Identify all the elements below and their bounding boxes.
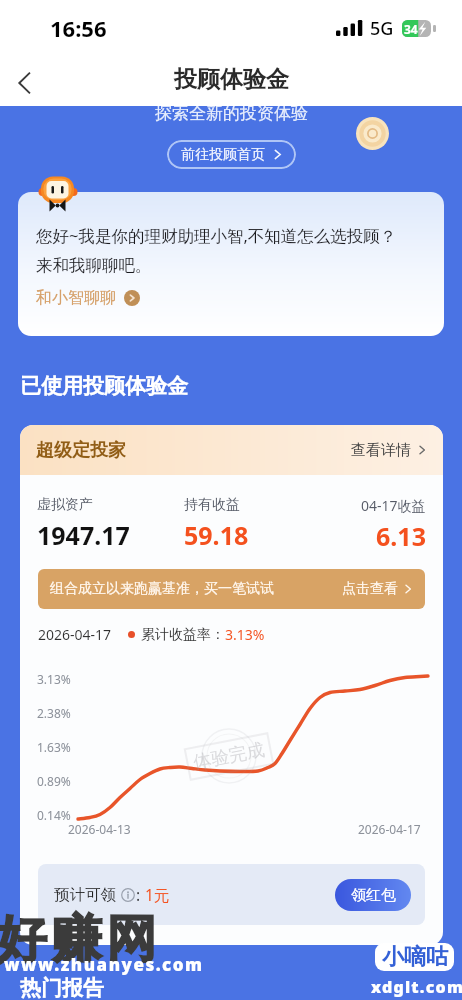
staticText: 59.18 — [184, 518, 249, 552]
staticText: 组合成立以来跑赢基准，买一笔试试 — [50, 580, 274, 598]
staticText: 2026-04-17 — [358, 821, 421, 837]
staticText: xdglt.com — [371, 976, 462, 998]
staticText: 投顾体验金 — [174, 65, 289, 94]
button[interactable]: 超级定投家 — [20, 425, 443, 475]
staticText: 和小智聊聊 — [36, 288, 116, 308]
staticText: 小嘀咕 — [382, 943, 448, 971]
staticText: 1元 — [145, 884, 170, 905]
staticText: 3.13% — [225, 625, 265, 644]
staticText: 探索全新的投资体验 — [155, 103, 308, 124]
staticText: 前往投顾首页 — [181, 146, 265, 164]
staticText: 0.14% — [37, 807, 71, 823]
staticText: 5G — [370, 16, 394, 41]
staticText: 04-17收益 — [361, 496, 426, 515]
staticText: 3.13% — [37, 671, 71, 687]
staticText: 累计收益率： — [141, 626, 225, 644]
staticText: 2026-04-13 — [68, 821, 131, 837]
staticText: 已使用投顾体验金 — [20, 373, 188, 399]
staticText: 超级定投家 — [36, 439, 126, 462]
staticText: : — [136, 884, 145, 905]
staticText: 领红包 — [351, 886, 396, 905]
button[interactable]: 前往投顾首页 — [167, 140, 296, 169]
staticText: 16:56 — [50, 13, 107, 43]
staticText: 点击查看 — [342, 580, 398, 598]
button[interactable]: Back — [2, 59, 46, 103]
staticText: www.zhuanyes.com — [4, 953, 204, 976]
staticText: 6.13 — [376, 519, 426, 553]
staticText: 2026-04-17 — [38, 625, 112, 644]
staticText: 您好~我是你的理财助理小智,不知道怎么选投顾？ 来和我聊聊吧。 — [36, 224, 397, 276]
staticText: 热门报告 — [20, 975, 104, 1000]
staticText: 好赚网 — [0, 908, 159, 971]
button[interactable]: 组合成立以来跑赢基准，买一笔试试 — [38, 569, 425, 609]
staticText: 34 — [404, 21, 418, 37]
staticText: 2.38% — [37, 705, 71, 721]
staticText: 1.63% — [37, 739, 71, 755]
staticText: 0.89% — [37, 773, 71, 789]
button[interactable]: 领红包 — [335, 879, 411, 911]
staticText: 虚拟资产 — [37, 496, 93, 514]
staticText: 体验完成 — [191, 738, 267, 775]
staticText: 1947.17 — [37, 518, 130, 552]
staticText: 查看详情 — [351, 441, 411, 460]
staticText: 持有收益 — [184, 496, 240, 514]
button[interactable]: 您好~我是你的理财助理小智,不知道怎么选投顾？ 来和我聊聊吧。 — [18, 192, 444, 336]
button[interactable]: 和小智聊聊 — [36, 288, 140, 308]
staticText: 预计可领 — [54, 885, 116, 905]
